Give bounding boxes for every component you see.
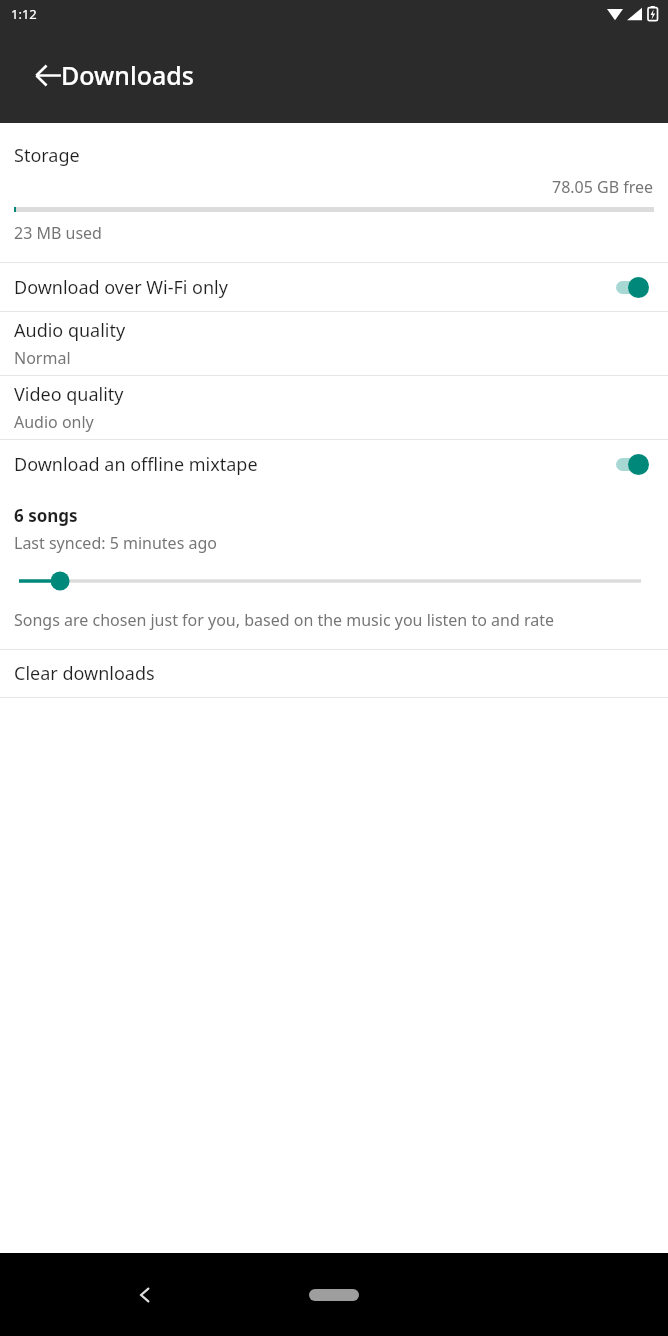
staticText: Download over Wi-Fi only: [14, 275, 228, 300]
button[interactable]: Video quality: [0, 376, 668, 439]
staticText: Normal: [14, 347, 71, 369]
button[interactable]: Audio quality: [0, 312, 668, 375]
button[interactable]: Download an offline mixtape: [0, 440, 668, 488]
staticText: Downloads: [61, 58, 194, 92]
staticText: 23 MB used: [14, 222, 102, 244]
staticText: Clear downloads: [14, 661, 155, 686]
staticText: Audio quality: [14, 318, 126, 343]
staticText: 78.05 GB free: [552, 176, 654, 198]
button[interactable]: Clear downloads: [0, 650, 668, 697]
button[interactable]: Back: [22, 49, 74, 101]
staticText: Storage: [14, 143, 80, 168]
staticText: Audio only: [14, 411, 94, 433]
staticText: 6 songs: [14, 504, 78, 527]
staticText: Download an offline mixtape: [14, 452, 258, 477]
button[interactable]: Home: [305, 1285, 363, 1305]
button[interactable]: Download over Wi-Fi only: [0, 263, 668, 311]
staticText: 1:12: [11, 5, 37, 23]
button[interactable]: Mixtape size: [14, 570, 641, 592]
staticText: Video quality: [14, 382, 124, 407]
button[interactable]: Back: [123, 1273, 167, 1317]
button[interactable]: Storage: [0, 123, 668, 262]
staticText: Last synced: 5 minutes ago: [14, 532, 217, 554]
staticText: Songs are chosen just for you, based on …: [14, 609, 554, 631]
